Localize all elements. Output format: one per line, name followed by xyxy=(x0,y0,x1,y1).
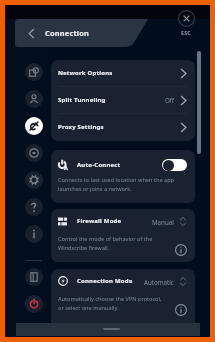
staticText: Connection xyxy=(45,28,90,38)
button[interactable]: Network xyxy=(25,63,43,81)
staticText: Network Options xyxy=(58,69,113,77)
staticText: Auto-Connect xyxy=(77,161,121,169)
button[interactable]: Help xyxy=(25,198,43,216)
button[interactable]: Network Options xyxy=(51,60,195,86)
staticText: Connection Mode xyxy=(77,277,133,285)
staticText: Off xyxy=(165,96,175,104)
button[interactable]: Auto-Connect xyxy=(162,159,187,171)
staticText: Automatically choose the VPN protocol, o… xyxy=(58,295,168,312)
button[interactable]: Proxy Settings xyxy=(51,114,195,140)
staticText: Split Tunneling xyxy=(58,96,106,104)
button[interactable]: Automatic xyxy=(144,277,187,286)
button[interactable]: About xyxy=(25,225,43,243)
button[interactable]: Info xyxy=(175,244,187,256)
button[interactable]: Power xyxy=(25,295,43,313)
button[interactable]: Logs xyxy=(25,268,43,286)
staticText: Automatic xyxy=(144,278,174,286)
button[interactable]: Split Tunneling xyxy=(51,87,195,113)
staticText: Firewall Mode xyxy=(77,217,122,225)
button[interactable]: General xyxy=(25,144,43,162)
staticText: Control the mode of behavior of the Wind… xyxy=(58,235,158,252)
button[interactable]: Connection xyxy=(25,117,43,135)
button[interactable]: Back xyxy=(15,19,125,47)
staticText: Proxy Settings xyxy=(58,123,104,131)
button[interactable]: Settings xyxy=(25,171,43,189)
staticText: ESC xyxy=(181,29,191,36)
other: Back xyxy=(28,28,35,39)
button[interactable]: Close xyxy=(174,10,198,36)
button[interactable]: Account xyxy=(25,90,43,108)
button[interactable]: Info xyxy=(175,304,187,316)
staticText: Connects to last used location when the … xyxy=(58,176,180,193)
staticText: Manual xyxy=(152,218,174,226)
button[interactable]: Manual xyxy=(152,217,187,226)
